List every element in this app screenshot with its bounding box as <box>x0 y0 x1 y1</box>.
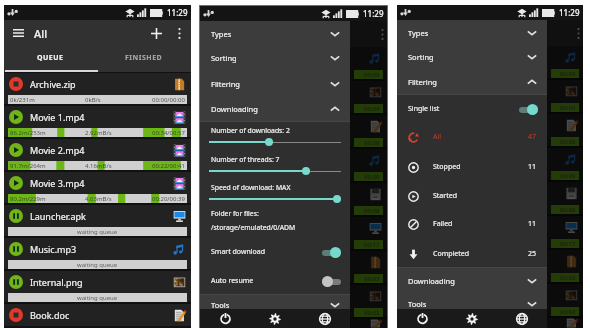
staticText: Types <box>211 29 232 39</box>
staticText: Tools <box>211 300 230 310</box>
button[interactable]: Movie 1.mp4 <box>4 106 191 139</box>
staticText: Stopped <box>433 162 461 172</box>
staticText: 2.92mB/s <box>85 129 112 137</box>
staticText: Single list <box>408 104 440 114</box>
staticText: Movie 2.mp4 <box>30 144 85 156</box>
staticText: Filtering <box>211 79 240 89</box>
button[interactable]: Downloading <box>200 97 350 121</box>
staticText: All <box>34 26 48 41</box>
staticText: 11:29 <box>559 7 580 18</box>
staticText: Number of downloads: 2 <box>211 126 290 135</box>
staticText: Auto resume <box>211 276 254 286</box>
button[interactable]: More options <box>170 24 188 42</box>
staticText: /storage/emulated/0/ADM <box>211 223 296 232</box>
staticText: 00:63 <box>560 274 576 282</box>
button[interactable]: Tools <box>200 293 350 317</box>
button[interactable]: All <box>397 124 547 150</box>
button[interactable]: Music.mp3 <box>4 238 191 271</box>
staticText: 00:02 <box>364 309 380 317</box>
staticText: 00:08 <box>364 139 380 147</box>
staticText: 00:08 <box>560 206 576 214</box>
staticText: Folder for files: <box>211 209 259 218</box>
button[interactable]: Settings <box>447 309 497 328</box>
staticText: 00:22/00:41 <box>152 162 185 170</box>
staticText: Movie 1.mp4 <box>30 111 85 123</box>
button[interactable]: Completed <box>397 241 547 267</box>
button[interactable]: Single list <box>397 96 547 122</box>
staticText: 0kB/s <box>85 96 101 104</box>
button[interactable]: Book.doc <box>4 304 191 326</box>
button[interactable]: Types <box>200 22 350 46</box>
staticText: 11 <box>528 219 537 229</box>
staticText: 11:29 <box>363 8 384 19</box>
staticText: 4.16mB/s <box>85 162 112 170</box>
staticText: Failed <box>433 219 453 229</box>
button[interactable]: Navigation menu <box>8 23 28 43</box>
staticText: 80.2m/229m <box>10 195 46 203</box>
staticText: Downloading <box>408 276 455 286</box>
staticText: Downloading <box>211 104 258 114</box>
staticText: 00:09 <box>560 70 576 78</box>
button[interactable]: Internal.png <box>4 271 191 304</box>
staticText: 00:09 <box>560 172 576 180</box>
button[interactable]: Exit <box>397 309 447 328</box>
staticText: Music.mp3 <box>30 243 77 255</box>
staticText: 0k/231m <box>10 96 35 104</box>
staticText: Completed <box>433 249 470 259</box>
staticText: Number of threads: 7 <box>211 155 280 164</box>
staticText: Tools <box>408 299 427 309</box>
staticText: Book.doc <box>30 309 70 321</box>
button[interactable]: Movie 2.mp4 <box>4 139 191 172</box>
staticText: 00:20/00:39 <box>152 195 185 203</box>
staticText: 91.7m/264m <box>10 162 46 170</box>
staticText: 00:02 <box>560 308 576 316</box>
staticText: 4.03mB/s <box>85 195 112 203</box>
staticText: 00:09 <box>364 173 380 181</box>
button[interactable]: Archive.zip <box>4 73 191 106</box>
button[interactable]: Filtering <box>397 70 547 94</box>
button[interactable]: Auto resume <box>200 268 350 294</box>
button[interactable]: Exit <box>200 309 250 328</box>
staticText: waiting queue <box>77 294 118 302</box>
button[interactable]: Movie 3.mp4 <box>4 172 191 205</box>
button[interactable]: QUEUE <box>4 46 97 70</box>
button[interactable]: Filtering <box>200 72 350 96</box>
button[interactable]: Add download <box>146 23 166 43</box>
button[interactable]: Failed <box>397 211 547 237</box>
staticText: 47 <box>528 132 537 142</box>
staticText: Internal.png <box>30 276 83 288</box>
staticText: 00:08 <box>364 207 380 215</box>
button[interactable]: Sorting <box>200 46 350 70</box>
staticText: 00:17 <box>560 240 576 248</box>
staticText: 11 <box>528 162 537 172</box>
staticText: Sorting <box>408 52 434 62</box>
staticText: All <box>433 132 442 142</box>
staticText: waiting queue <box>77 228 118 236</box>
staticText: 00:34/00:57 <box>152 129 185 137</box>
staticText: Filtering <box>408 77 437 87</box>
button[interactable]: Launcher.apk <box>4 205 191 238</box>
staticText: Movie 3.mp4 <box>30 177 85 189</box>
staticText: 11:29 <box>167 7 188 18</box>
button[interactable]: Tools <box>397 292 547 316</box>
staticText: 00:17 <box>364 241 380 249</box>
button[interactable]: Browser <box>300 309 350 328</box>
staticText: Launcher.apk <box>30 210 86 222</box>
staticText: FINISHED <box>125 53 163 63</box>
staticText: QUEUE <box>37 53 64 63</box>
button[interactable]: Settings <box>250 309 300 328</box>
staticText: waiting queue <box>77 261 118 269</box>
button[interactable]: Downloading <box>397 269 547 293</box>
button[interactable]: FINISHED <box>97 46 191 70</box>
button[interactable]: Started <box>397 183 547 209</box>
staticText: Types <box>408 28 429 38</box>
button[interactable]: Sorting <box>397 45 547 69</box>
button[interactable]: Stopped <box>397 154 547 180</box>
staticText: 25 <box>528 249 537 259</box>
staticText: 00:63 <box>364 275 380 283</box>
staticText: 00:08 <box>560 138 576 146</box>
button[interactable]: Smart download <box>200 239 350 265</box>
button[interactable]: Browser <box>497 309 547 328</box>
button[interactable]: Types <box>397 21 547 45</box>
staticText: 00:09 <box>364 71 380 79</box>
